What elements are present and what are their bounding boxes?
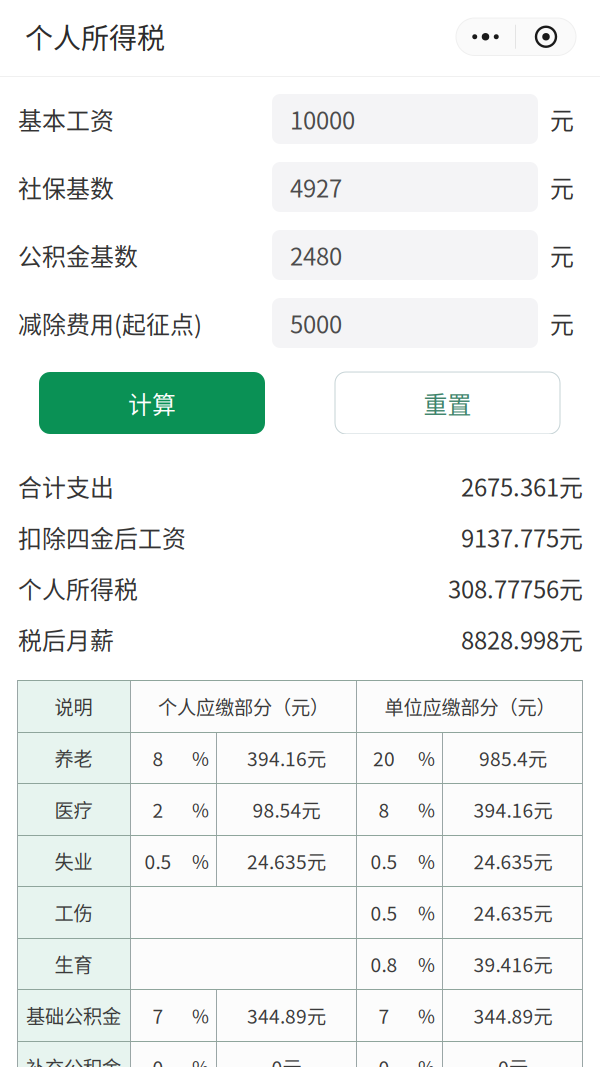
staticText: 7	[152, 1002, 163, 1029]
staticText: 8	[378, 796, 389, 823]
staticText: %	[418, 951, 435, 977]
staticText: 7	[378, 1002, 389, 1029]
staticText: 0	[378, 1053, 389, 1067]
staticText: 计算	[128, 386, 176, 420]
staticText: 医疗	[54, 796, 92, 823]
staticText: %	[192, 796, 209, 823]
staticText: %	[192, 1054, 209, 1067]
staticText: %	[418, 745, 435, 771]
staticText: 98.54元	[252, 796, 320, 823]
staticText: 0.5	[370, 899, 397, 926]
staticText: 8	[152, 744, 163, 772]
staticText: 10000	[290, 102, 355, 136]
staticText: 补充公积金	[26, 1053, 121, 1067]
staticText: 0.5	[370, 847, 397, 875]
staticText: %	[192, 745, 209, 771]
staticText: 社保基数	[18, 170, 114, 204]
staticText: 减除费用(起征点)	[18, 306, 202, 340]
staticText: 0元	[498, 1053, 528, 1067]
staticText: 养老	[54, 744, 92, 772]
staticText: 基本工资	[18, 102, 114, 136]
staticText: 9137.775元	[461, 520, 583, 554]
staticText: 2	[152, 796, 163, 823]
staticText: 工伤	[54, 899, 92, 926]
staticText: %	[192, 1002, 209, 1029]
staticText: %	[418, 1054, 435, 1067]
staticText: 个人应缴部分（元）	[158, 693, 329, 720]
staticText: 0元	[271, 1053, 301, 1067]
staticText: 失业	[54, 847, 92, 875]
staticText: %	[418, 1002, 435, 1029]
staticText: 20	[373, 744, 395, 772]
staticText: 39.416元	[473, 950, 552, 978]
staticText: 4927	[290, 170, 342, 204]
staticText: 生育	[54, 950, 92, 978]
staticText: 元	[550, 170, 574, 204]
staticText: 344.89元	[473, 1002, 552, 1029]
staticText: 985.4元	[479, 744, 547, 772]
staticText: 394.16元	[247, 744, 326, 772]
staticText: 单位应缴部分（元）	[384, 693, 555, 720]
staticText: 扣除四金后工资	[18, 520, 186, 554]
staticText: %	[418, 899, 435, 926]
staticText: 重置	[423, 386, 471, 420]
staticText: 0.5	[144, 847, 171, 875]
staticText: %	[192, 848, 209, 874]
staticText: 元	[550, 238, 574, 272]
staticText: 24.635元	[473, 899, 552, 926]
staticText: 344.89元	[247, 1002, 326, 1029]
staticText: 5000	[290, 306, 342, 340]
staticText: 说明	[54, 693, 92, 720]
staticText: %	[418, 796, 435, 823]
button[interactable]: 计算	[39, 372, 265, 434]
staticText: 24.635元	[247, 847, 326, 875]
button[interactable]: 重置	[335, 372, 560, 434]
staticText: 0.8	[370, 950, 397, 978]
staticText: 个人所得税	[25, 16, 165, 57]
staticText: 0	[152, 1053, 163, 1067]
staticText: 公积金基数	[18, 238, 138, 272]
button[interactable]: 更多	[456, 18, 515, 55]
staticText: 个人所得税	[18, 571, 138, 605]
button[interactable]: 关闭	[516, 18, 576, 55]
staticText: 元	[550, 306, 574, 340]
staticText: 税后月薪	[18, 622, 114, 656]
staticText: 24.635元	[473, 847, 552, 875]
staticText: 394.16元	[473, 796, 552, 823]
staticText: 合计支出	[18, 469, 114, 503]
staticText: 308.77756元	[448, 571, 583, 605]
staticText: 2480	[290, 238, 342, 272]
staticText: 2675.361元	[461, 469, 583, 503]
staticText: %	[418, 848, 435, 874]
staticText: 元	[550, 102, 574, 136]
staticText: 8828.998元	[461, 622, 583, 656]
staticText: 基础公积金	[26, 1002, 121, 1029]
